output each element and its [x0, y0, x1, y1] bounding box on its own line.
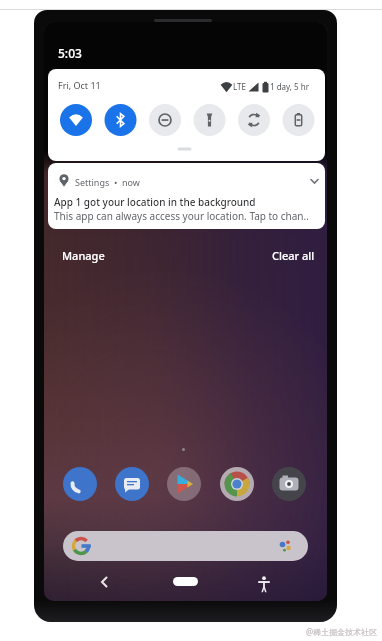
button[interactable]: [220, 467, 254, 501]
button[interactable]: [63, 467, 97, 501]
staticText: This app can always access your location…: [54, 209, 309, 223]
button[interactable]: [92, 570, 116, 594]
staticText: Clear all: [272, 248, 315, 263]
button[interactable]: [115, 467, 149, 501]
staticText: 1 day, 5 hr: [270, 81, 309, 92]
button[interactable]: [105, 104, 137, 136]
button[interactable]: [194, 104, 226, 136]
button[interactable]: [272, 467, 306, 501]
staticText: Settings • now: [75, 176, 140, 188]
button[interactable]: [238, 104, 270, 136]
staticText: LTE: [233, 81, 246, 92]
button[interactable]: Clear all: [264, 246, 319, 264]
staticText: Manage: [62, 248, 105, 263]
button[interactable]: [60, 104, 92, 136]
staticText: 5:03: [58, 45, 82, 61]
button[interactable]: [167, 467, 201, 501]
button[interactable]: [252, 572, 276, 596]
staticText: Fri, Oct 11: [58, 79, 101, 91]
button[interactable]: [283, 104, 315, 136]
button[interactable]: Manage: [54, 246, 124, 264]
button[interactable]: [173, 577, 198, 586]
button[interactable]: [63, 531, 308, 561]
button[interactable]: [149, 104, 181, 136]
staticText: App 1 got your location in the backgroun…: [54, 195, 256, 209]
staticText: @稀土掘金技术社区: [306, 626, 378, 637]
button[interactable]: Settings • now: [48, 163, 325, 229]
